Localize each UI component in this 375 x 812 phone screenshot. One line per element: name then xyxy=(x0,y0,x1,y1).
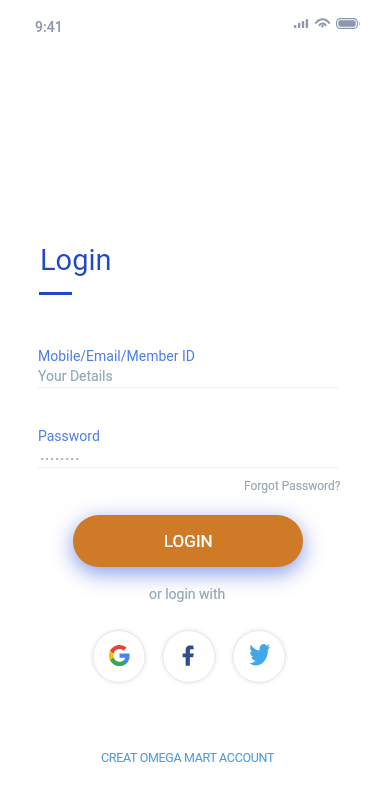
staticText: Mobile/Email/Member ID xyxy=(38,348,195,364)
button[interactable]: Forgot Password? xyxy=(238,476,347,496)
staticText: Your Details xyxy=(38,368,113,384)
staticText: CREAT OMEGA MART ACCOUNT xyxy=(101,750,275,765)
staticText: LOGIN xyxy=(164,531,213,551)
staticText: Login xyxy=(40,243,112,277)
button[interactable]: Sign in with Google xyxy=(93,629,145,681)
button[interactable]: LOGIN xyxy=(73,515,303,567)
staticText: Forgot Password? xyxy=(244,479,341,493)
staticText: Password xyxy=(38,428,100,444)
staticText: 9:41 xyxy=(35,19,63,35)
staticText: or login with xyxy=(149,586,226,602)
button[interactable]: Sign in with Facebook xyxy=(163,629,215,681)
button[interactable]: Sign in with Twitter xyxy=(233,629,285,681)
button[interactable]: CREAT OMEGA MART ACCOUNT xyxy=(91,744,285,771)
